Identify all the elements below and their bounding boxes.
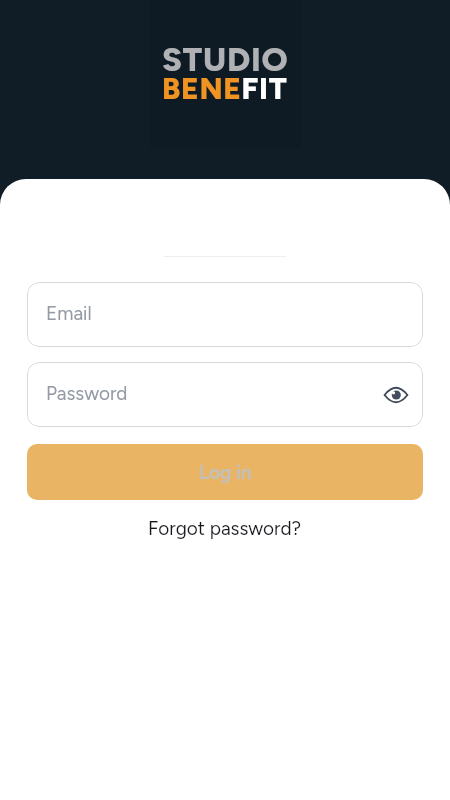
- button[interactable]: Forgot password?: [134, 511, 316, 546]
- staticText: Log in: [199, 461, 252, 484]
- button[interactable]: Password: [27, 362, 423, 427]
- staticText: Forgot password?: [148, 517, 302, 540]
- button[interactable]: Email: [27, 282, 423, 347]
- staticText: Password: [46, 382, 128, 405]
- staticText: Email: [46, 302, 92, 325]
- staticText: STUDIO: [162, 40, 289, 80]
- staticText: BENEFIT: [162, 70, 288, 106]
- button[interactable]: Show password: [379, 378, 413, 412]
- button[interactable]: Log in: [27, 444, 423, 500]
